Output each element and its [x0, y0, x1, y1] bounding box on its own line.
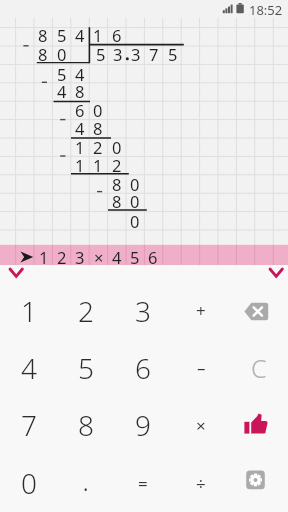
staticText: 8 — [112, 173, 122, 195]
staticText: 0 — [130, 210, 140, 232]
staticText: 0 — [21, 464, 37, 502]
staticText: × — [94, 246, 104, 268]
staticText: 3 — [113, 43, 123, 65]
button[interactable]: + — [172, 282, 230, 339]
staticText: 1 — [93, 154, 103, 176]
staticText: 0 — [112, 136, 122, 158]
staticText: 3 — [75, 246, 85, 268]
button[interactable]: 8 — [57, 396, 114, 454]
staticText: × — [196, 414, 206, 437]
staticText: 4 — [75, 63, 85, 85]
button[interactable]: 6 — [114, 339, 172, 396]
staticText: 8 — [75, 80, 85, 102]
button[interactable]: 7 — [0, 396, 57, 454]
staticText: 5 — [78, 349, 94, 387]
button[interactable]: = — [114, 454, 172, 512]
staticText: 0 — [130, 190, 140, 212]
staticText: 8 — [38, 24, 48, 46]
staticText: 2 — [78, 292, 94, 330]
staticText: 4 — [75, 117, 85, 139]
staticText: 8 — [38, 43, 48, 65]
button[interactable]: × — [172, 396, 230, 454]
staticText: 5 — [96, 43, 106, 65]
staticText: 3 — [135, 292, 151, 330]
staticText: 8 — [78, 406, 94, 444]
staticText: 0 — [57, 43, 67, 65]
button[interactable]: 9 — [114, 396, 172, 454]
staticText: 8 — [93, 117, 103, 139]
staticText: – — [197, 356, 206, 379]
staticText: 4 — [112, 246, 122, 268]
staticText: 7 — [149, 43, 159, 65]
staticText: 6 — [148, 246, 158, 268]
staticText: 5 — [57, 63, 67, 85]
staticText: 4 — [75, 24, 85, 46]
button[interactable]: – — [172, 339, 230, 396]
staticText: 4 — [21, 349, 37, 387]
staticText: 5 — [130, 246, 140, 268]
button[interactable]: 4 — [0, 339, 57, 396]
button[interactable]: 2 — [57, 282, 114, 339]
button[interactable] — [0, 245, 288, 265]
staticText: 9 — [135, 406, 151, 444]
staticText: 8 — [112, 190, 122, 212]
staticText: 1 — [93, 24, 103, 46]
button[interactable] — [258, 264, 286, 281]
staticText: 1 — [75, 136, 85, 158]
staticText: 4 — [57, 80, 67, 102]
button[interactable]: 1 — [0, 282, 57, 339]
staticText: 0 — [130, 173, 140, 195]
staticText: 6 — [135, 349, 151, 387]
button[interactable]: . — [57, 454, 114, 512]
button[interactable] — [230, 454, 288, 512]
staticText: . — [83, 470, 89, 497]
staticText: + — [196, 299, 206, 322]
staticText: = — [138, 472, 148, 495]
staticText: 6 — [75, 99, 85, 121]
button[interactable] — [230, 282, 288, 339]
button[interactable]: 5 — [57, 339, 114, 396]
staticText: 7 — [21, 406, 37, 444]
button[interactable] — [230, 396, 288, 454]
button[interactable]: ÷ — [172, 454, 230, 512]
staticText: ÷ — [196, 472, 206, 495]
staticText: 5 — [168, 43, 178, 65]
staticText: 2 — [57, 246, 67, 268]
staticText: 1 — [21, 292, 37, 330]
button[interactable]: 3 — [114, 282, 172, 339]
staticText: 2 — [93, 136, 103, 158]
staticText: 3 — [131, 43, 141, 65]
staticText: 5 — [57, 24, 67, 46]
staticText: 0 — [93, 99, 103, 121]
staticText: 1 — [39, 246, 49, 268]
button[interactable] — [2, 264, 30, 281]
staticText: 1 — [75, 154, 85, 176]
staticText: 2 — [112, 154, 122, 176]
staticText: 18:52 — [249, 1, 283, 16]
button[interactable]: 0 — [0, 454, 57, 512]
staticText: 6 — [112, 24, 122, 46]
button[interactable]: C — [230, 339, 288, 396]
staticText: C — [251, 351, 267, 385]
